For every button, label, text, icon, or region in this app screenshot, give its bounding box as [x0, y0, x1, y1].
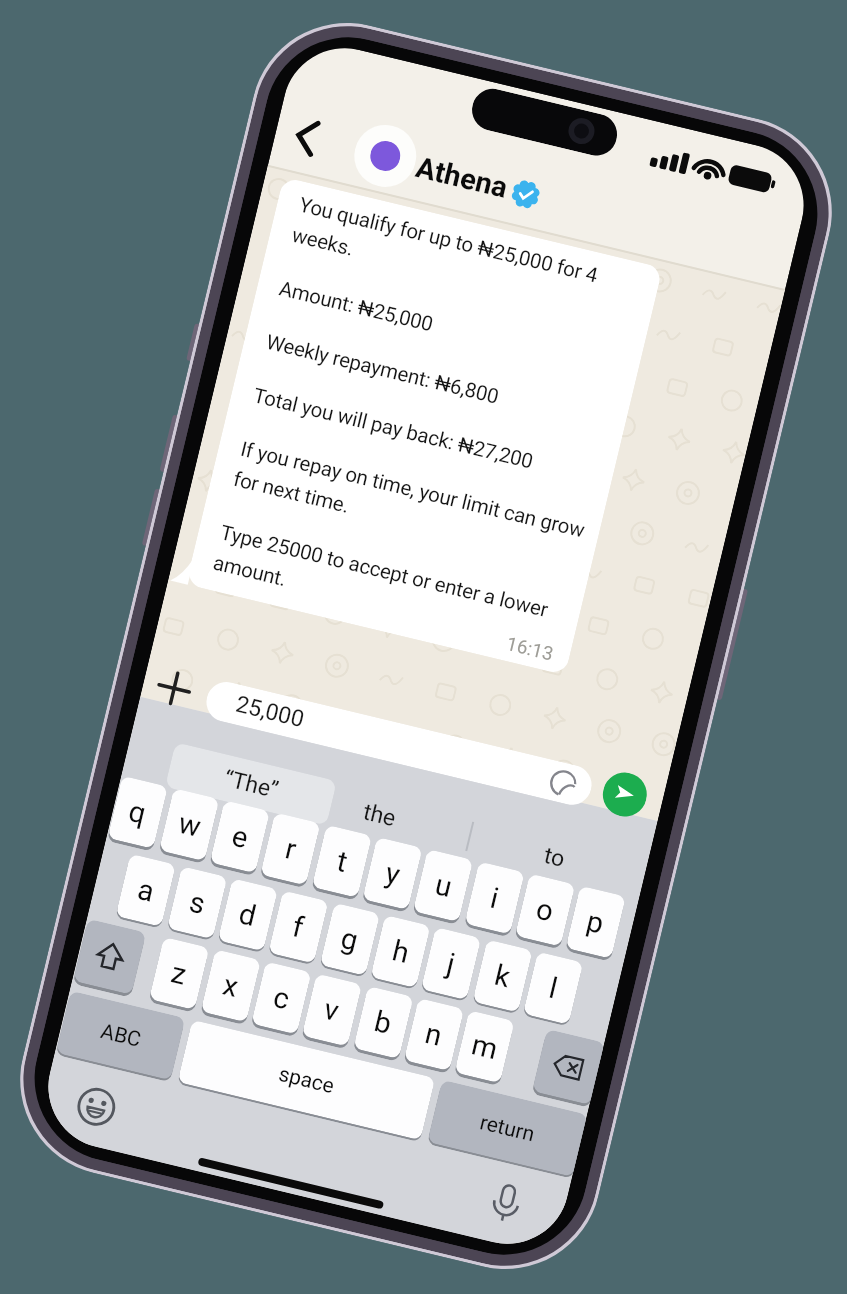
- button[interactable]: l: [523, 951, 583, 1025]
- staticText: h: [389, 933, 413, 970]
- button[interactable]: ABC: [56, 991, 185, 1080]
- staticText: Total you will pay back: ₦27,200: [251, 383, 536, 473]
- staticText: d: [236, 896, 260, 933]
- staticText: m: [468, 1027, 502, 1066]
- button[interactable]: the: [310, 775, 448, 854]
- staticText: z: [168, 955, 190, 992]
- staticText: p: [583, 904, 608, 941]
- staticText: Athena: [413, 150, 511, 205]
- button[interactable]: b: [353, 986, 414, 1059]
- staticText: return: [477, 1110, 538, 1148]
- button[interactable]: i: [464, 861, 525, 935]
- button[interactable]: [532, 1029, 604, 1105]
- button[interactable]: a: [115, 854, 176, 927]
- button[interactable]: 25,000: [202, 678, 596, 809]
- button[interactable]: z: [149, 937, 209, 1010]
- staticText: b: [371, 1004, 396, 1041]
- button[interactable]: q: [107, 776, 168, 849]
- staticText: a: [134, 872, 158, 909]
- button[interactable]: Athena: [413, 150, 511, 205]
- button[interactable]: n: [404, 998, 464, 1071]
- button[interactable]: r: [260, 812, 321, 885]
- button[interactable]: v: [302, 973, 362, 1047]
- button[interactable]: g: [320, 903, 380, 976]
- button[interactable]: h: [370, 915, 431, 988]
- staticText: You qualify for up to ₦25,000 for 4 week…: [290, 193, 601, 318]
- staticText: r: [282, 831, 300, 867]
- staticText: k: [491, 958, 514, 994]
- button[interactable]: e: [209, 800, 270, 873]
- button[interactable]: f: [268, 890, 329, 964]
- button[interactable]: p: [565, 886, 626, 959]
- staticText: g: [338, 921, 362, 958]
- staticText: c: [270, 980, 294, 1016]
- staticText: u: [432, 867, 455, 904]
- button[interactable]: return: [427, 1080, 587, 1177]
- staticText: “The”: [221, 765, 281, 804]
- button[interactable]: d: [217, 878, 278, 951]
- button[interactable]: m: [454, 1010, 515, 1083]
- button[interactable]: to: [485, 817, 623, 896]
- staticText: i: [487, 881, 503, 915]
- staticText: v: [321, 992, 343, 1028]
- button[interactable]: x: [200, 949, 261, 1022]
- button[interactable]: u: [413, 849, 473, 922]
- button[interactable]: [348, 119, 423, 193]
- staticText: space: [276, 1062, 337, 1099]
- button[interactable]: “The”: [165, 742, 337, 826]
- button[interactable]: t: [312, 825, 372, 898]
- staticText: n: [422, 1016, 446, 1053]
- staticText: to: [541, 842, 568, 873]
- button[interactable]: w: [159, 788, 219, 861]
- staticText: l: [546, 971, 561, 1006]
- staticText: j: [444, 946, 458, 981]
- button[interactable]: space: [177, 1020, 435, 1140]
- staticText: f: [289, 909, 308, 945]
- staticText: t: [334, 844, 351, 879]
- staticText: w: [175, 806, 204, 844]
- button[interactable]: j: [421, 927, 481, 1000]
- button[interactable]: [598, 768, 651, 821]
- button[interactable]: o: [515, 873, 575, 947]
- button[interactable]: c: [251, 961, 312, 1035]
- staticText: s: [186, 884, 208, 921]
- button[interactable]: y: [362, 837, 423, 910]
- staticText: y: [382, 855, 404, 892]
- staticText: e: [229, 818, 252, 855]
- staticText: ABC: [98, 1019, 144, 1053]
- staticText: the: [360, 798, 399, 832]
- staticText: q: [125, 794, 150, 831]
- button[interactable]: s: [167, 866, 227, 939]
- staticText: o: [533, 892, 557, 929]
- button[interactable]: [73, 919, 146, 995]
- staticText: 16:13: [504, 632, 556, 665]
- staticText: x: [219, 967, 242, 1004]
- button[interactable]: k: [472, 939, 533, 1013]
- staticText: Amount: ₦25,000: [277, 276, 436, 336]
- staticText: Weekly repayment: ₦6,800: [264, 330, 502, 409]
- staticText: Type 25000 to accept or enter a lower am…: [211, 520, 550, 652]
- staticText: 25,000: [233, 691, 307, 733]
- staticText: If you repay on time, your limit can gro…: [231, 437, 587, 573]
